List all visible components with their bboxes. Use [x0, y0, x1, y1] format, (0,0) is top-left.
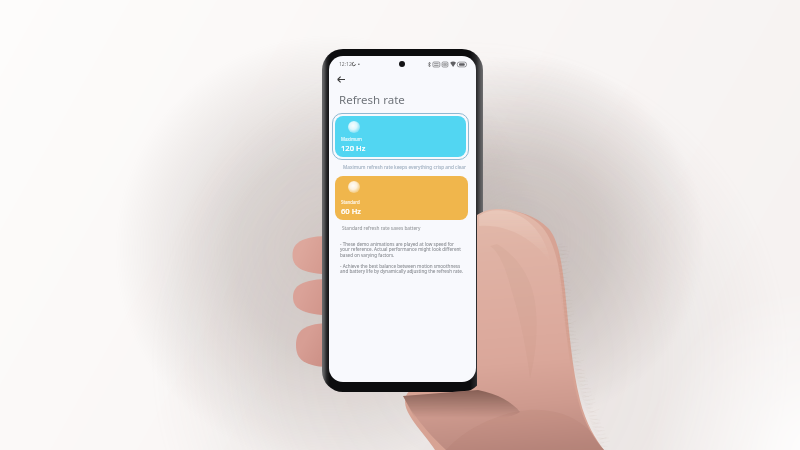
- staticText: 120 Hz: [341, 143, 366, 153]
- staticText: Refresh rate: [339, 92, 405, 108]
- staticText: - Achieve the best balance between motio…: [340, 263, 464, 275]
- staticText: 60 Hz: [341, 206, 361, 216]
- button[interactable]: Back: [333, 71, 349, 87]
- staticText: Standard refresh rate saves battery: [342, 225, 421, 231]
- staticText: - These demo animations are played at lo…: [340, 241, 461, 259]
- button[interactable]: Maximum: [335, 116, 466, 157]
- staticText: Standard: [341, 199, 360, 205]
- staticText: 12:12: [339, 61, 352, 68]
- staticText: Maximum refresh rate keeps everything cr…: [343, 164, 466, 170]
- button[interactable]: Standard: [335, 176, 468, 220]
- staticText: Maximum: [341, 136, 362, 142]
